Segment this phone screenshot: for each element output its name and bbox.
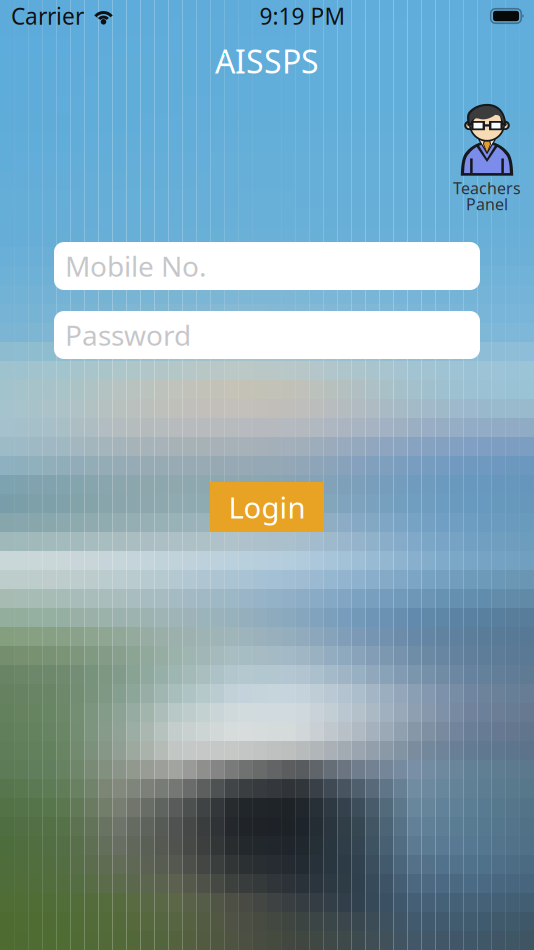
button[interactable]: Teachers [445,102,529,208]
button[interactable]: Login [210,482,324,532]
staticText: 9:19 PM [259,1,345,31]
staticText: Mobile No. [65,247,207,285]
staticText: Panel [466,193,508,215]
staticText: Password [65,316,191,354]
staticText: Carrier [11,1,84,31]
button[interactable]: Mobile No. [54,242,480,290]
staticText: Login [228,487,305,526]
staticText: AISSPS [215,40,319,82]
button[interactable]: Password [54,311,480,359]
staticText: Teachers [453,177,521,199]
